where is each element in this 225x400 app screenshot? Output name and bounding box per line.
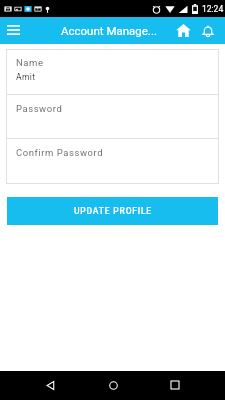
button[interactable]: Notifications [197,20,218,41]
button[interactable]: Back [37,372,63,398]
button[interactable]: Home [173,20,194,41]
button[interactable]: Name [6,49,219,94]
button[interactable]: Recent apps [162,372,188,398]
staticText: Name [16,57,44,68]
button[interactable]: Password [6,95,219,138]
staticText: Confirm Password [16,147,104,158]
button[interactable]: Home [100,372,126,398]
button[interactable]: Confirm Password [6,139,219,184]
staticText: UPDATE PROFILE [74,206,152,216]
button[interactable]: Open navigation drawer [2,20,24,42]
staticText: 12:24 [202,4,224,14]
staticText: Account Manage... [61,24,157,37]
staticText: Amit [16,72,36,82]
button[interactable]: UPDATE PROFILE [7,197,218,225]
staticText: Password [16,103,63,114]
